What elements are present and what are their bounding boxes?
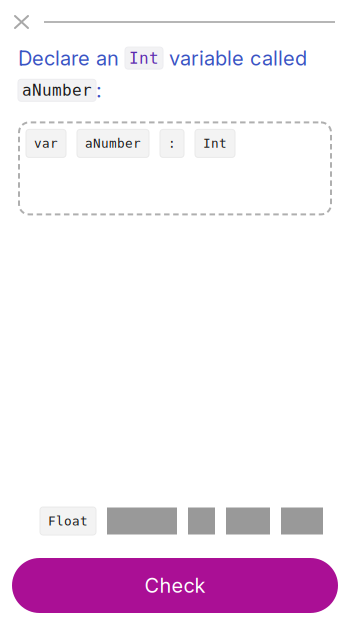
staticText: aNumber <box>85 136 141 151</box>
button[interactable]: Close <box>0 8 44 36</box>
staticText: Check <box>144 573 205 598</box>
staticText: : <box>96 78 102 102</box>
staticText: Declare an <box>18 46 125 70</box>
staticText: Int <box>129 49 159 67</box>
button[interactable]: Check <box>12 558 338 613</box>
staticText: var <box>34 136 58 151</box>
staticText: variable called <box>163 46 307 70</box>
staticText: Float <box>48 514 88 528</box>
button[interactable]: Float <box>40 507 96 535</box>
staticText: : <box>168 136 176 151</box>
staticText: aNumber <box>22 81 92 100</box>
staticText: Int <box>203 136 227 151</box>
